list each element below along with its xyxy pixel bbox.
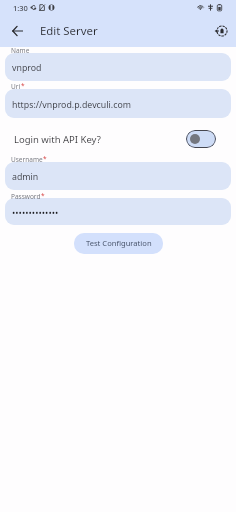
staticText: admin — [12, 171, 39, 183]
button[interactable]: vnprod — [5, 53, 231, 81]
button[interactable]: https://vnprod.p.devculi.com — [5, 89, 231, 118]
staticText: Login with API Key? — [14, 133, 101, 146]
staticText: •••••••••••••• — [12, 207, 59, 219]
staticText: Password — [11, 192, 41, 201]
staticText: Test Configuration — [86, 238, 152, 248]
button[interactable]: Login with API Key toggle — [186, 130, 216, 148]
staticText: * — [41, 191, 45, 200]
button[interactable]: Back — [7, 21, 27, 41]
button[interactable]: Test Configuration — [74, 233, 163, 254]
staticText: https://vnprod.p.devculi.com — [12, 99, 131, 111]
staticText: * — [21, 81, 25, 90]
button[interactable]: admin — [5, 162, 231, 190]
staticText: Name — [11, 46, 30, 55]
staticText: Uri — [11, 82, 21, 91]
staticText: vnprod — [12, 62, 42, 74]
staticText: Edit Server — [40, 23, 98, 39]
staticText: 1:30 — [13, 3, 28, 13]
staticText: * — [43, 154, 47, 163]
staticText: Username — [11, 155, 43, 164]
button[interactable]: Restore defaults — [212, 21, 232, 41]
button[interactable]: •••••••••••••• — [5, 198, 231, 225]
button[interactable]: Login with API Key? — [14, 126, 216, 152]
